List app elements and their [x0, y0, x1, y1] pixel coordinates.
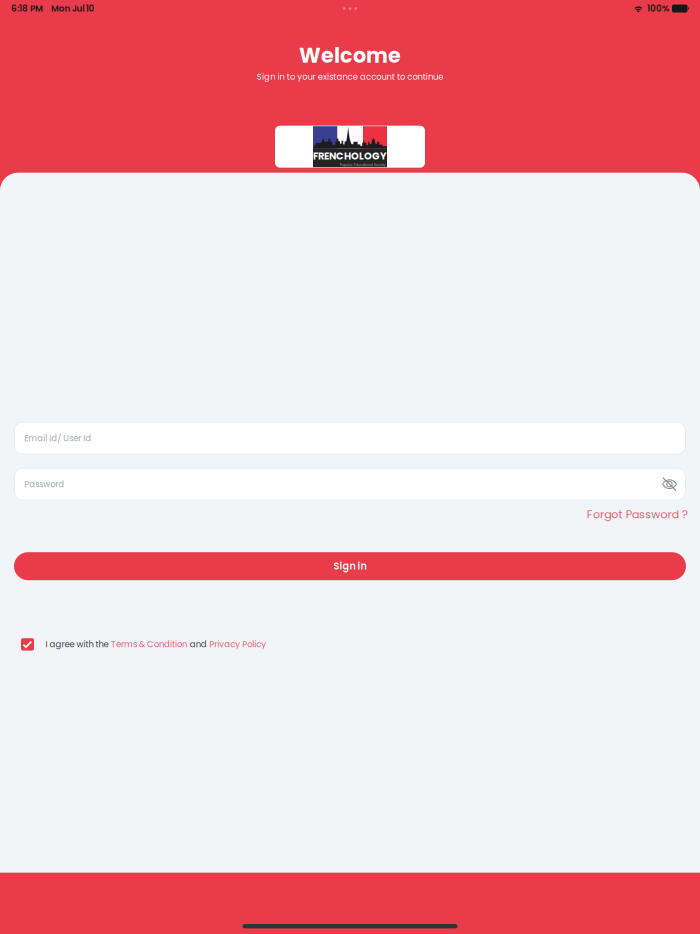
- button[interactable]: Terms & Condition: [108, 638, 187, 650]
- staticText: 6:18 PM: [11, 2, 43, 15]
- staticText: Privacy Policy: [209, 638, 266, 650]
- button[interactable]: Privacy Policy: [207, 638, 266, 650]
- staticText: Welcome: [299, 41, 401, 70]
- staticText: Sign in to your existance account to con…: [257, 71, 443, 83]
- staticText: Mon Jul 10: [51, 2, 94, 14]
- staticText: FRENCHOLOGY: [313, 149, 387, 163]
- staticText: I agree with the: [45, 638, 108, 650]
- staticText: Forgot Password ?: [587, 507, 688, 522]
- staticText: and: [190, 638, 207, 650]
- button[interactable]: Sign in: [14, 552, 686, 580]
- button[interactable]: Forgot Password ?: [587, 507, 688, 522]
- staticText: Populus Educational Society: [340, 163, 386, 167]
- button[interactable]: I agree with the terms: [21, 638, 34, 651]
- button[interactable]: Show password: [662, 477, 677, 492]
- staticText: 100%: [647, 2, 669, 15]
- staticText: Email Id/ User Id: [24, 432, 91, 444]
- staticText: Password: [24, 478, 64, 490]
- staticText: Terms & Condition: [111, 638, 187, 650]
- staticText: Sign in: [333, 559, 366, 573]
